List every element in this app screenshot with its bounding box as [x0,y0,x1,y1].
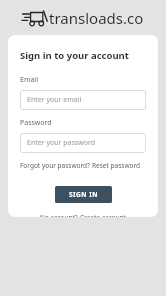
button[interactable]: Create account [80,213,126,217]
staticText: Sign in to your account [20,49,129,62]
staticText: SIGN IN [69,190,99,199]
staticText: No account? [40,213,80,217]
button[interactable]: SIGN IN [55,186,112,203]
staticText: Enter your password [27,138,95,148]
staticText: Enter your email [27,95,82,105]
staticText: transloads.co [49,8,144,28]
other: transloads.co logo [22,11,48,26]
staticText: Password [20,118,52,128]
staticText: Forgot your password? [20,161,92,170]
button[interactable]: Enter your email [20,90,146,110]
button[interactable]: Enter your password [20,133,146,153]
button[interactable]: Reset password [92,161,140,170]
staticText: Email [20,75,38,85]
staticText: Create account [80,213,126,217]
staticText: Reset password [92,161,140,170]
